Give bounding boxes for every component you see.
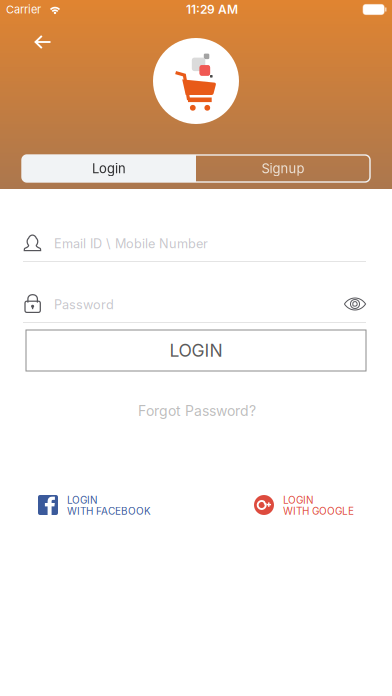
button[interactable]: Signup <box>196 155 370 182</box>
button[interactable]: LOGIN <box>38 494 148 516</box>
button[interactable]: Login <box>22 155 196 182</box>
button[interactable]: Back <box>20 22 66 62</box>
staticText: Login <box>92 161 126 176</box>
staticText: WITH GOOGLE <box>283 505 354 517</box>
staticText: Forgot Password? <box>138 402 256 419</box>
button[interactable]: Show password <box>337 289 373 319</box>
button[interactable]: LOGIN <box>26 330 366 371</box>
button[interactable]: Forgot Password? <box>117 399 277 423</box>
staticText: Email ID \ Mobile Number <box>54 236 208 251</box>
button[interactable]: LOGIN <box>254 494 359 516</box>
staticText: 11:29 AM <box>186 2 238 17</box>
staticText: LOGIN <box>67 494 98 506</box>
staticText: LOGIN <box>169 340 222 361</box>
staticText: WITH FACEBOOK <box>67 505 151 517</box>
staticText: Signup <box>261 161 304 176</box>
staticText: LOGIN <box>283 494 314 506</box>
staticText: Password <box>54 297 114 312</box>
staticText: Carrier <box>6 3 41 16</box>
